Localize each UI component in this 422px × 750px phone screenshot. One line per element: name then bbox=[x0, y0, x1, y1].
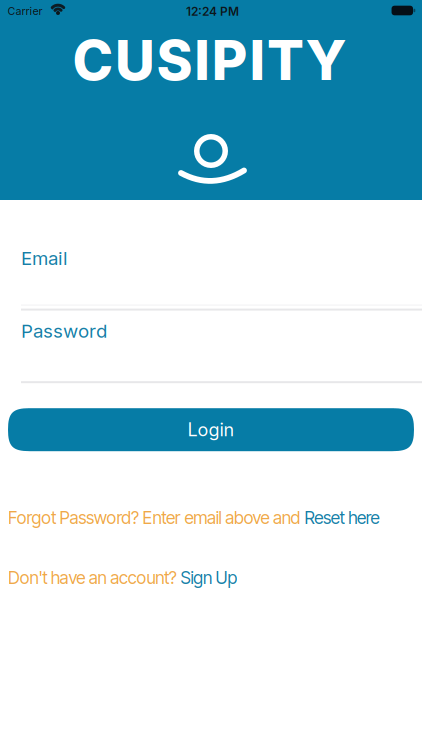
staticText: Don't have an account? bbox=[8, 567, 181, 588]
button[interactable]: Login bbox=[8, 408, 414, 451]
staticText: Sign Up bbox=[181, 567, 237, 588]
staticText: Email bbox=[21, 247, 68, 270]
staticText: Password bbox=[21, 320, 107, 342]
staticText: Forgot Password? Enter email above and bbox=[8, 507, 304, 528]
staticText: Carrier bbox=[7, 4, 42, 17]
button[interactable]: Reset here bbox=[304, 507, 380, 528]
staticText: CUSIPITY bbox=[72, 27, 347, 93]
staticText: 12:24 PM bbox=[186, 4, 239, 19]
button[interactable]: Sign Up bbox=[181, 567, 237, 588]
staticText: Login bbox=[187, 419, 234, 441]
staticText: Reset here bbox=[304, 507, 380, 528]
